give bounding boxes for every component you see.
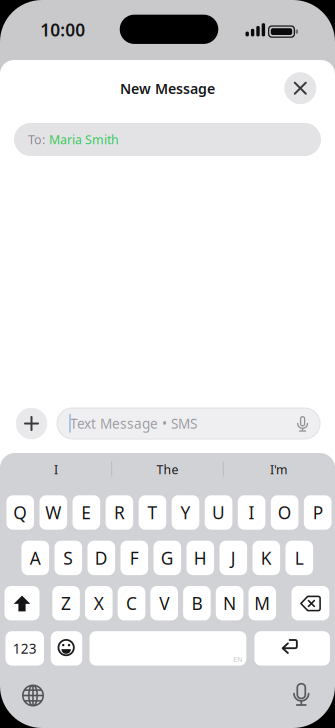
button[interactable]: A [21,541,49,575]
staticText: V [159,591,169,615]
staticText: Q [13,501,27,524]
button[interactable] [51,631,82,666]
staticText: N [223,591,236,615]
button[interactable]: J [219,541,247,575]
staticText: R [114,501,125,524]
button[interactable]: G [153,541,181,575]
button[interactable]: Z [52,586,80,620]
staticText: L [295,546,304,570]
button[interactable]: C [118,586,145,620]
button[interactable]: F [120,541,148,575]
staticText: I [249,501,255,524]
staticText: EN [233,655,242,664]
button[interactable] [291,586,329,620]
button[interactable]: EN [89,631,246,666]
button[interactable]: E [72,495,100,530]
button[interactable]: R [106,495,133,530]
staticText: To: [28,131,45,148]
staticText: Y [180,501,190,524]
button[interactable]: W [39,495,67,530]
staticText: New Message [120,79,215,98]
button[interactable] [16,678,50,712]
button[interactable]: The [115,457,219,481]
button[interactable]: K [252,541,280,575]
staticText: A [30,546,41,570]
staticText: O [278,501,292,524]
staticText: H [194,546,207,570]
button[interactable]: U [205,495,232,530]
button[interactable]: Q [6,495,34,530]
staticText: F [130,546,139,570]
staticText: X [94,591,104,615]
button[interactable]: Y [172,495,199,530]
button[interactable] [284,677,318,711]
staticText: E [81,501,91,524]
staticText: P [313,501,323,524]
button[interactable]: I [4,457,108,481]
staticText: 123 [13,639,37,658]
staticText: K [261,546,272,570]
staticText: T [147,501,157,524]
button[interactable]: L [285,541,313,575]
button[interactable]: N [216,586,243,620]
button[interactable]: I [238,495,265,530]
staticText: C [126,591,137,615]
button[interactable] [16,408,47,439]
staticText: The [156,461,178,478]
button[interactable]: P [304,495,331,530]
staticText: Maria Smith [49,131,119,148]
staticText: G [161,546,174,570]
staticText: S [63,546,73,570]
staticText: Text Message • SMS [70,414,197,433]
staticText: B [191,591,202,615]
staticText: M [254,591,270,615]
button[interactable]: V [150,586,178,620]
button[interactable]: To: [14,123,321,156]
button[interactable] [254,631,330,666]
staticText: D [95,546,108,570]
staticText: Z [61,591,71,615]
staticText: 10:00 [40,18,85,41]
button[interactable]: M [248,586,276,620]
button[interactable]: Text Message • SMS [57,408,320,439]
button[interactable]: D [87,541,115,575]
button[interactable]: I'm [226,457,330,481]
button[interactable]: 123 [5,631,44,666]
button[interactable]: O [271,495,298,530]
staticText: W [45,501,61,524]
button[interactable] [284,72,316,104]
staticText: U [212,501,225,524]
button[interactable] [4,586,39,620]
staticText: I'm [270,461,287,478]
button[interactable]: X [85,586,113,620]
button[interactable]: S [54,541,82,575]
button[interactable]: B [183,586,211,620]
button[interactable]: H [186,541,214,575]
button[interactable]: T [139,495,166,530]
staticText: I [54,461,58,478]
staticText: J [231,546,236,570]
